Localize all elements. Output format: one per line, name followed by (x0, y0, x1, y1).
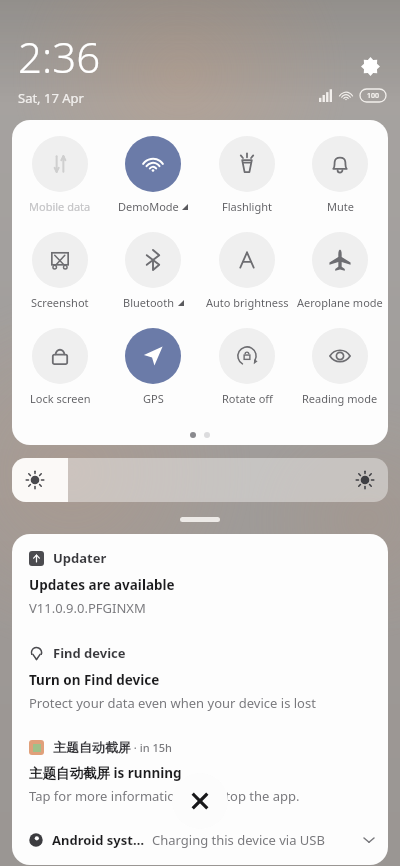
staticText: GPS (143, 391, 164, 406)
button[interactable]: Screenshot (14, 230, 106, 312)
staticText: Turn on Find device (29, 671, 160, 689)
staticText: Mute (327, 199, 354, 214)
staticText: Tap for more information or to stop the … (29, 787, 300, 805)
button[interactable] (12, 458, 388, 502)
button[interactable]: Close notifications (172, 773, 228, 829)
button[interactable]: Updater (12, 534, 388, 629)
button[interactable]: Settings (352, 48, 388, 84)
staticText: Mobile data (29, 199, 91, 214)
staticText: Android syst… (52, 831, 145, 849)
button[interactable]: Find device (12, 629, 388, 724)
staticText: Aeroplane mode (297, 295, 383, 310)
staticText: 100 (367, 91, 380, 101)
staticText: Flashlight (222, 199, 272, 214)
button[interactable]: Rotate off (201, 326, 293, 408)
staticText: Sat, 17 Apr (18, 89, 84, 107)
staticText: Bluetooth (123, 295, 175, 310)
staticText: Updater (53, 549, 107, 567)
staticText: Screenshot (31, 295, 89, 310)
staticText: 2:36 (18, 28, 101, 85)
staticText: · in 15h (131, 740, 172, 755)
button[interactable]: DemoMode (107, 134, 199, 216)
staticText: Lock screen (30, 391, 91, 406)
button[interactable]: Mobile data (14, 134, 106, 216)
staticText: Updates are available (29, 576, 175, 594)
staticText: Auto brightness (206, 295, 289, 310)
button[interactable]: Bluetooth (107, 230, 199, 312)
staticText: DemoMode (118, 199, 179, 214)
button[interactable]: Aeroplane mode (294, 230, 386, 312)
button[interactable]: 主题自动截屏 (12, 724, 388, 817)
button[interactable]: Auto brightness (201, 230, 293, 312)
button[interactable]: Flashlight (201, 134, 293, 216)
button[interactable]: GPS (107, 326, 199, 408)
staticText: Charging this device via USB (152, 831, 325, 849)
staticText: Protect your data even when your device … (29, 694, 316, 712)
staticText: V11.0.9.0.PFGINXM (29, 599, 146, 617)
staticText: 主题自动截屏 is running (29, 764, 182, 782)
staticText: Find device (53, 644, 126, 662)
staticText: 主题自动截屏 (53, 739, 131, 755)
button[interactable]: Mute (294, 134, 386, 216)
staticText: Reading mode (302, 391, 378, 406)
button[interactable]: Reading mode (294, 326, 386, 408)
button[interactable]: Android syst… (12, 817, 388, 865)
button[interactable]: Lock screen (14, 326, 106, 408)
staticText: Rotate off (222, 391, 273, 406)
